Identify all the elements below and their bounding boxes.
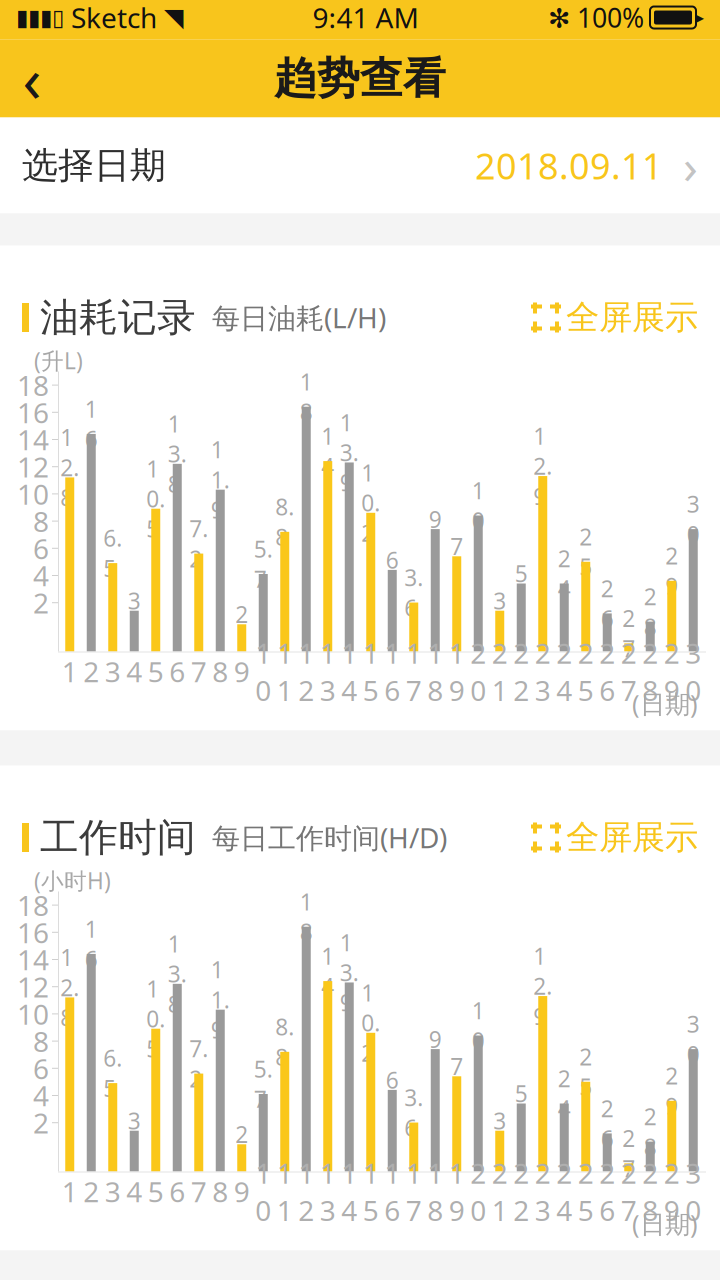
staticText: 4	[126, 653, 142, 690]
staticText: 每日工作时间(H/D)	[212, 819, 447, 856]
staticText: 10	[472, 995, 485, 1056]
staticText: 8	[212, 653, 228, 690]
staticText: 20	[470, 634, 486, 709]
staticText: 16	[17, 914, 49, 951]
staticText: 2	[235, 599, 248, 629]
staticText: 18	[427, 634, 443, 709]
button[interactable]: 选择日期	[0, 117, 720, 213]
staticText: 30	[687, 1009, 700, 1069]
staticText: 8.8	[275, 1012, 294, 1072]
staticText: 13.9	[340, 927, 359, 1018]
staticText: 27	[622, 1123, 635, 1183]
staticText: 6	[386, 1065, 399, 1095]
staticText: 25	[578, 1154, 594, 1229]
staticText: 22	[513, 634, 529, 709]
staticText: 4	[33, 1077, 49, 1114]
staticText: 30	[685, 634, 701, 709]
staticText: 26	[599, 1154, 615, 1229]
staticText: ›	[671, 134, 698, 197]
staticText: Sketch	[64, 0, 164, 36]
staticText: 全屏展示	[566, 817, 698, 858]
staticText: 16	[384, 634, 400, 709]
staticText: 3	[105, 1173, 121, 1210]
staticText: 16	[85, 914, 98, 974]
staticText: 26	[601, 1093, 614, 1153]
staticText: 5.7	[254, 534, 273, 594]
staticText: 18	[300, 367, 313, 427]
staticText: 10.2	[361, 458, 380, 548]
staticText: 14	[321, 941, 334, 1001]
button[interactable]: 全屏展示	[533, 291, 698, 344]
staticText: 8	[33, 502, 49, 540]
staticText: 14	[17, 941, 49, 978]
staticText: 28	[642, 634, 658, 709]
staticText: 18	[427, 1154, 443, 1229]
staticText: 油耗记录	[40, 294, 196, 341]
staticText: 5	[148, 653, 164, 690]
staticText: 13.9	[340, 407, 359, 498]
staticText: 11.9	[211, 434, 230, 525]
staticText: 10	[17, 995, 49, 1032]
staticText: 29	[664, 1154, 680, 1229]
staticText: 25	[579, 1042, 592, 1102]
staticText: 选择日期	[22, 143, 166, 188]
staticText: 26	[601, 573, 614, 633]
button[interactable]: 全屏展示	[533, 811, 698, 864]
staticText: 3	[128, 586, 141, 616]
staticText: 11	[277, 1154, 293, 1229]
staticText: 13	[320, 634, 336, 709]
staticText: 3	[128, 1106, 141, 1136]
staticText: 13.8	[168, 929, 187, 1019]
staticText: 11.9	[211, 954, 230, 1045]
staticText: 14	[341, 1154, 357, 1229]
staticText: 24	[558, 1063, 571, 1124]
staticText: 8	[33, 1022, 49, 1060]
staticText: 2018.09.11	[475, 142, 663, 189]
staticText: 18	[17, 886, 49, 924]
staticText: 6.5	[103, 1043, 122, 1103]
staticText: 6	[386, 545, 399, 575]
staticText: 14	[17, 421, 49, 458]
staticText: 25	[579, 522, 592, 582]
staticText: 14	[341, 634, 357, 709]
staticText: 10.5	[146, 453, 165, 544]
staticText: 27	[621, 1154, 637, 1229]
staticText: 30	[685, 1154, 701, 1229]
staticText: 趋势查看	[274, 52, 446, 105]
staticText: 15	[363, 1154, 379, 1229]
staticText: 18	[300, 887, 313, 947]
staticText: 28	[644, 1101, 657, 1162]
staticText: 10.5	[146, 973, 165, 1064]
staticText: 13.8	[168, 409, 187, 499]
staticText: (升L)	[34, 345, 83, 375]
staticText: (日期)	[632, 1207, 698, 1240]
staticText: 6	[169, 653, 185, 690]
staticText: 29	[665, 1061, 678, 1121]
staticText: 工作时间	[40, 814, 196, 861]
staticText: 21	[492, 634, 508, 709]
staticText: 19	[449, 1154, 465, 1229]
button[interactable]: Back	[0, 39, 64, 117]
staticText: 16	[85, 394, 98, 454]
staticText: 10.2	[361, 978, 380, 1068]
staticText: 12.9	[533, 421, 552, 511]
staticText: ▮▮▮▯	[16, 5, 64, 30]
staticText: 12	[298, 634, 314, 709]
staticText: 16	[384, 1154, 400, 1229]
staticText: 29	[664, 634, 680, 709]
staticText: 8.8	[275, 492, 294, 552]
staticText: 10	[255, 634, 271, 709]
staticText: 7	[191, 1173, 207, 1210]
staticText: 5	[148, 1173, 164, 1210]
staticText: 5.7	[254, 1054, 273, 1114]
staticText: 13	[320, 1154, 336, 1229]
staticText: 4	[33, 557, 49, 594]
staticText: 9:41 AM	[312, 0, 418, 36]
staticText: 27	[622, 603, 635, 663]
staticText: 15	[363, 634, 379, 709]
staticText: 28	[642, 1154, 658, 1229]
staticText: 11	[277, 634, 293, 709]
staticText: 26	[599, 634, 615, 709]
staticText: 1	[62, 1173, 78, 1210]
staticText: ✻ 100%	[548, 0, 644, 35]
